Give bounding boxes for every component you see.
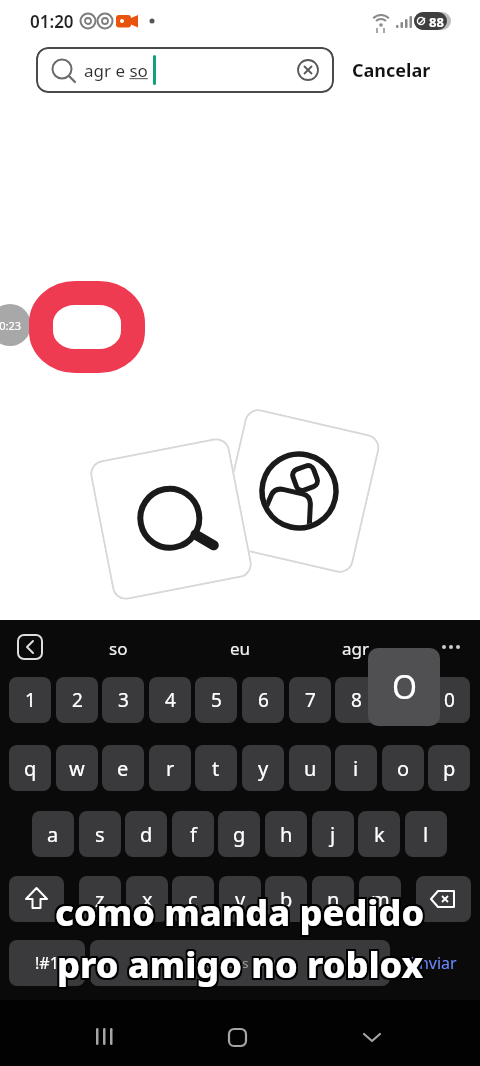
button[interactable]: h xyxy=(265,811,307,857)
button[interactable] xyxy=(90,940,390,986)
button[interactable]: agr xyxy=(326,635,386,661)
button[interactable]: Enviar xyxy=(395,940,471,986)
button[interactable]: v xyxy=(219,876,261,922)
staticText: pro amigo no roblox xyxy=(55,938,422,987)
button[interactable]: q xyxy=(9,745,51,791)
staticText: p xyxy=(443,755,456,782)
staticText: pro amigo no roblox xyxy=(57,942,424,991)
button[interactable]: agr e so xyxy=(36,47,334,93)
button[interactable]: r xyxy=(149,745,191,791)
staticText: !#1 xyxy=(35,952,59,974)
staticText: Cancelar xyxy=(352,58,431,83)
button[interactable]: t xyxy=(195,745,237,791)
staticText: 01:20 xyxy=(30,10,74,33)
button[interactable]: 2 xyxy=(56,677,98,723)
button[interactable]: d xyxy=(125,811,167,857)
staticText: so xyxy=(109,637,128,660)
staticText: 3 xyxy=(118,687,129,713)
button[interactable]: 4 xyxy=(149,677,191,723)
button[interactable]: Cancelar xyxy=(352,47,431,93)
button[interactable]: a xyxy=(32,811,74,857)
staticText: 5 xyxy=(211,687,222,713)
staticText: O xyxy=(392,665,417,709)
staticText: q xyxy=(24,755,37,782)
button[interactable]: u xyxy=(289,745,331,791)
staticText: h xyxy=(280,821,293,848)
staticText: f xyxy=(190,821,197,848)
button[interactable]: p xyxy=(428,745,470,791)
button[interactable]: m xyxy=(359,876,401,922)
button[interactable]: l xyxy=(405,811,447,857)
button[interactable]: 0 xyxy=(428,677,470,723)
staticText: 2 xyxy=(72,687,83,713)
staticText: como manda pedido xyxy=(53,886,423,935)
staticText: como manda pedido xyxy=(53,890,423,939)
staticText: como manda pedido xyxy=(57,888,427,937)
staticText: Enviar xyxy=(410,952,457,974)
staticText: i xyxy=(353,755,359,782)
staticText: e xyxy=(117,755,129,782)
button[interactable] xyxy=(416,876,471,922)
staticText: k xyxy=(374,821,385,848)
staticText: 00:23 xyxy=(0,318,22,333)
staticText: 1 xyxy=(25,687,36,713)
button[interactable] xyxy=(353,1018,391,1056)
button[interactable]: k xyxy=(358,811,400,857)
staticText: 88 xyxy=(429,13,444,31)
staticText: como manda pedido xyxy=(57,890,427,939)
staticText: pro amigo no roblox xyxy=(59,942,426,991)
button[interactable]: g xyxy=(218,811,260,857)
button[interactable]: 6 xyxy=(242,677,284,723)
button[interactable]: z xyxy=(79,876,121,922)
button[interactable]: 9 xyxy=(382,677,424,723)
button[interactable]: w xyxy=(56,745,98,791)
button[interactable] xyxy=(9,876,64,922)
staticText: pro amigo no roblox xyxy=(59,940,426,989)
staticText: pro amigo no roblox xyxy=(59,938,426,987)
button[interactable]: i xyxy=(335,745,377,791)
staticText: como manda pedido xyxy=(55,888,425,937)
staticText: agr e so xyxy=(84,59,148,82)
button[interactable]: f xyxy=(172,811,214,857)
staticText: v xyxy=(235,886,246,913)
staticText: u xyxy=(304,755,317,782)
button[interactable]: s xyxy=(79,811,121,857)
staticText: pro amigo no roblox xyxy=(57,940,424,989)
staticText: 9 xyxy=(398,687,409,713)
staticText: 0 xyxy=(444,687,455,713)
button[interactable]: so xyxy=(88,635,148,661)
staticText: l xyxy=(423,821,429,848)
staticText: w xyxy=(69,755,85,782)
button[interactable]: 8 xyxy=(335,677,377,723)
button[interactable] xyxy=(219,1018,257,1056)
button[interactable]: n xyxy=(312,876,354,922)
button[interactable]: x xyxy=(126,876,168,922)
button[interactable]: 1 xyxy=(9,677,51,723)
staticText: d xyxy=(140,821,153,848)
staticText: o xyxy=(397,755,410,782)
staticText: como manda pedido xyxy=(55,890,425,939)
staticText: eu xyxy=(230,637,251,660)
staticText: g xyxy=(233,821,246,848)
staticText: c xyxy=(188,886,198,913)
button[interactable]: eu xyxy=(210,635,270,661)
staticText: a xyxy=(47,821,59,848)
staticText: r xyxy=(166,755,175,782)
staticText: 7 xyxy=(305,687,316,713)
button[interactable]: o xyxy=(382,745,424,791)
button[interactable]: e xyxy=(102,745,144,791)
button[interactable]: c xyxy=(172,876,214,922)
button[interactable]: 7 xyxy=(289,677,331,723)
staticText: pro amigo no roblox xyxy=(57,938,424,987)
button[interactable]: !#1 xyxy=(9,940,85,986)
button[interactable] xyxy=(86,1018,124,1056)
button[interactable]: j xyxy=(312,811,354,857)
button[interactable]: 3 xyxy=(102,677,144,723)
staticText: 6 xyxy=(258,687,269,713)
staticText: como manda pedido xyxy=(57,886,427,935)
staticText: como manda pedido xyxy=(55,886,425,935)
button[interactable]: b xyxy=(265,876,307,922)
button[interactable]: 5 xyxy=(195,677,237,723)
button[interactable]: y xyxy=(242,745,284,791)
staticText: agr xyxy=(342,637,370,660)
